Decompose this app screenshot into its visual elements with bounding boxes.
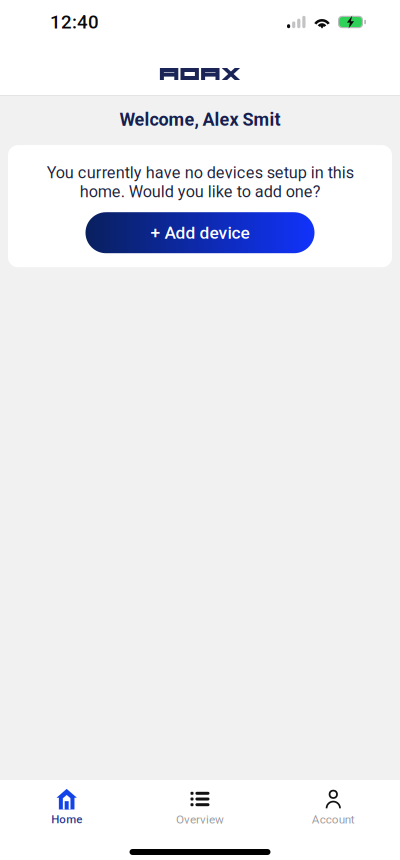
button[interactable]: + Add device: [85, 212, 314, 253]
staticText: Overview: [176, 812, 224, 826]
staticText: Account: [312, 812, 355, 826]
staticText: Welcome, Alex Smit: [119, 109, 280, 130]
staticText: You currently have no devices setup in t…: [46, 163, 353, 201]
button[interactable]: Account: [267, 780, 400, 834]
staticText: + Add device: [150, 223, 249, 243]
staticText: Home: [51, 813, 82, 826]
button[interactable]: Overview: [133, 780, 267, 834]
button[interactable]: Home: [0, 780, 133, 834]
staticText: 12:40: [50, 11, 99, 33]
